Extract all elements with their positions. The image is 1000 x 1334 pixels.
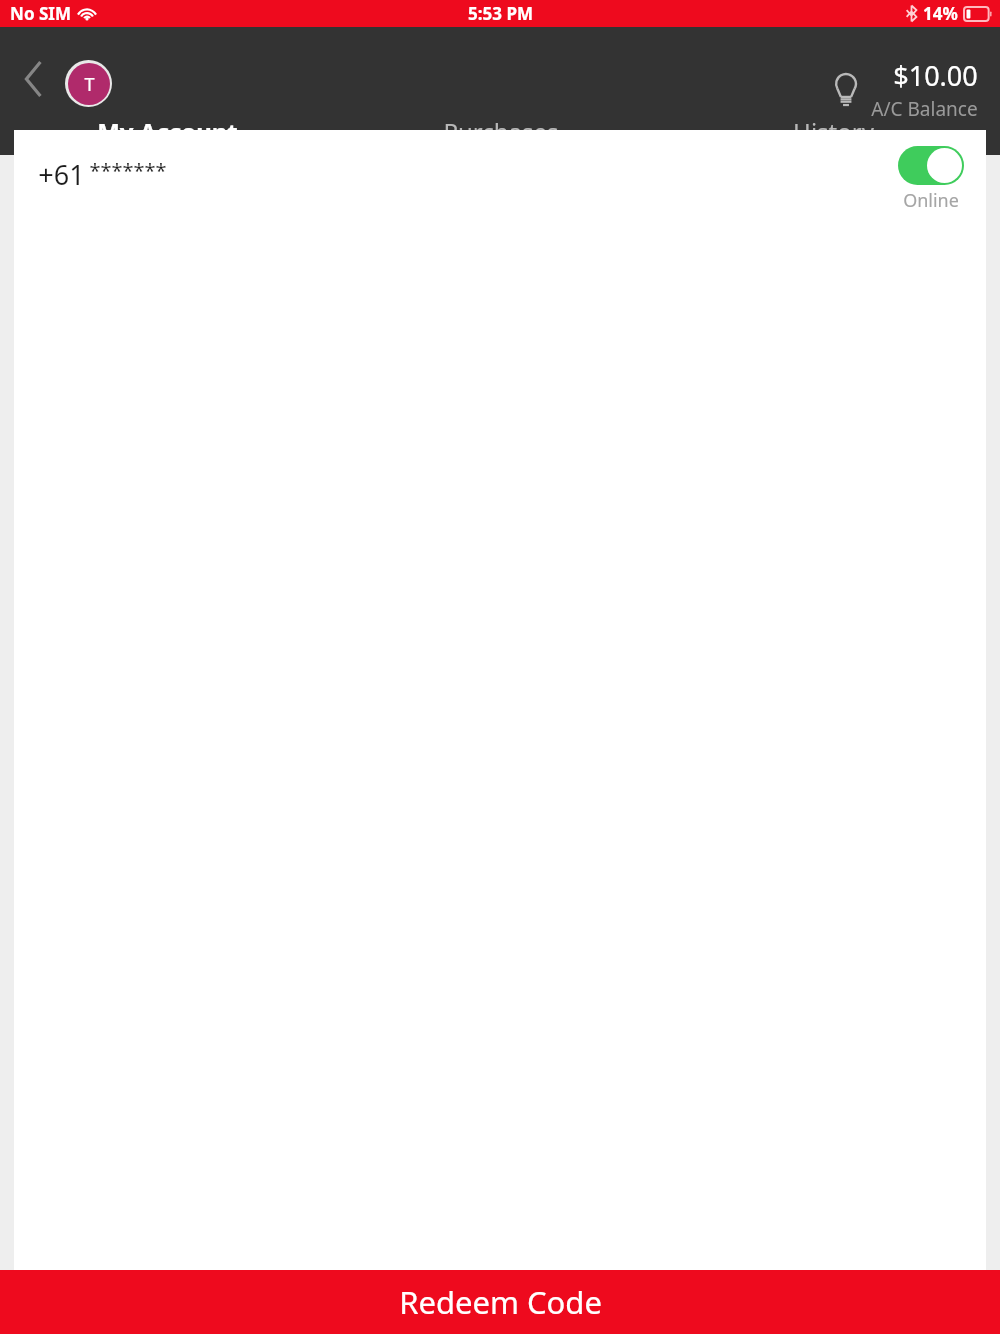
staticText: A/C Balance [871, 96, 978, 122]
staticText: ******* [89, 157, 167, 184]
staticText: +61 [38, 156, 85, 193]
staticText: 5:53 PM [468, 2, 533, 25]
button[interactable]: Online [898, 146, 964, 213]
staticText: History [793, 115, 874, 148]
button[interactable]: Purchases [334, 111, 667, 155]
button[interactable]: History [667, 111, 1000, 155]
staticText: Online [903, 188, 959, 213]
staticText: T [84, 72, 95, 97]
button[interactable]: Account avatar [65, 60, 112, 107]
staticText: $10.00 [893, 57, 978, 94]
button[interactable]: Redeem Code [0, 1270, 1000, 1334]
staticText: Purchases [443, 115, 559, 148]
button[interactable]: $10.00 [833, 57, 978, 122]
staticText: No SIM [10, 2, 71, 25]
button[interactable]: My Account [0, 111, 334, 155]
button[interactable]: Back [10, 55, 58, 103]
staticText: 14% [923, 2, 958, 25]
staticText: My Account [97, 115, 238, 148]
staticText: Redeem Code [399, 1281, 602, 1323]
